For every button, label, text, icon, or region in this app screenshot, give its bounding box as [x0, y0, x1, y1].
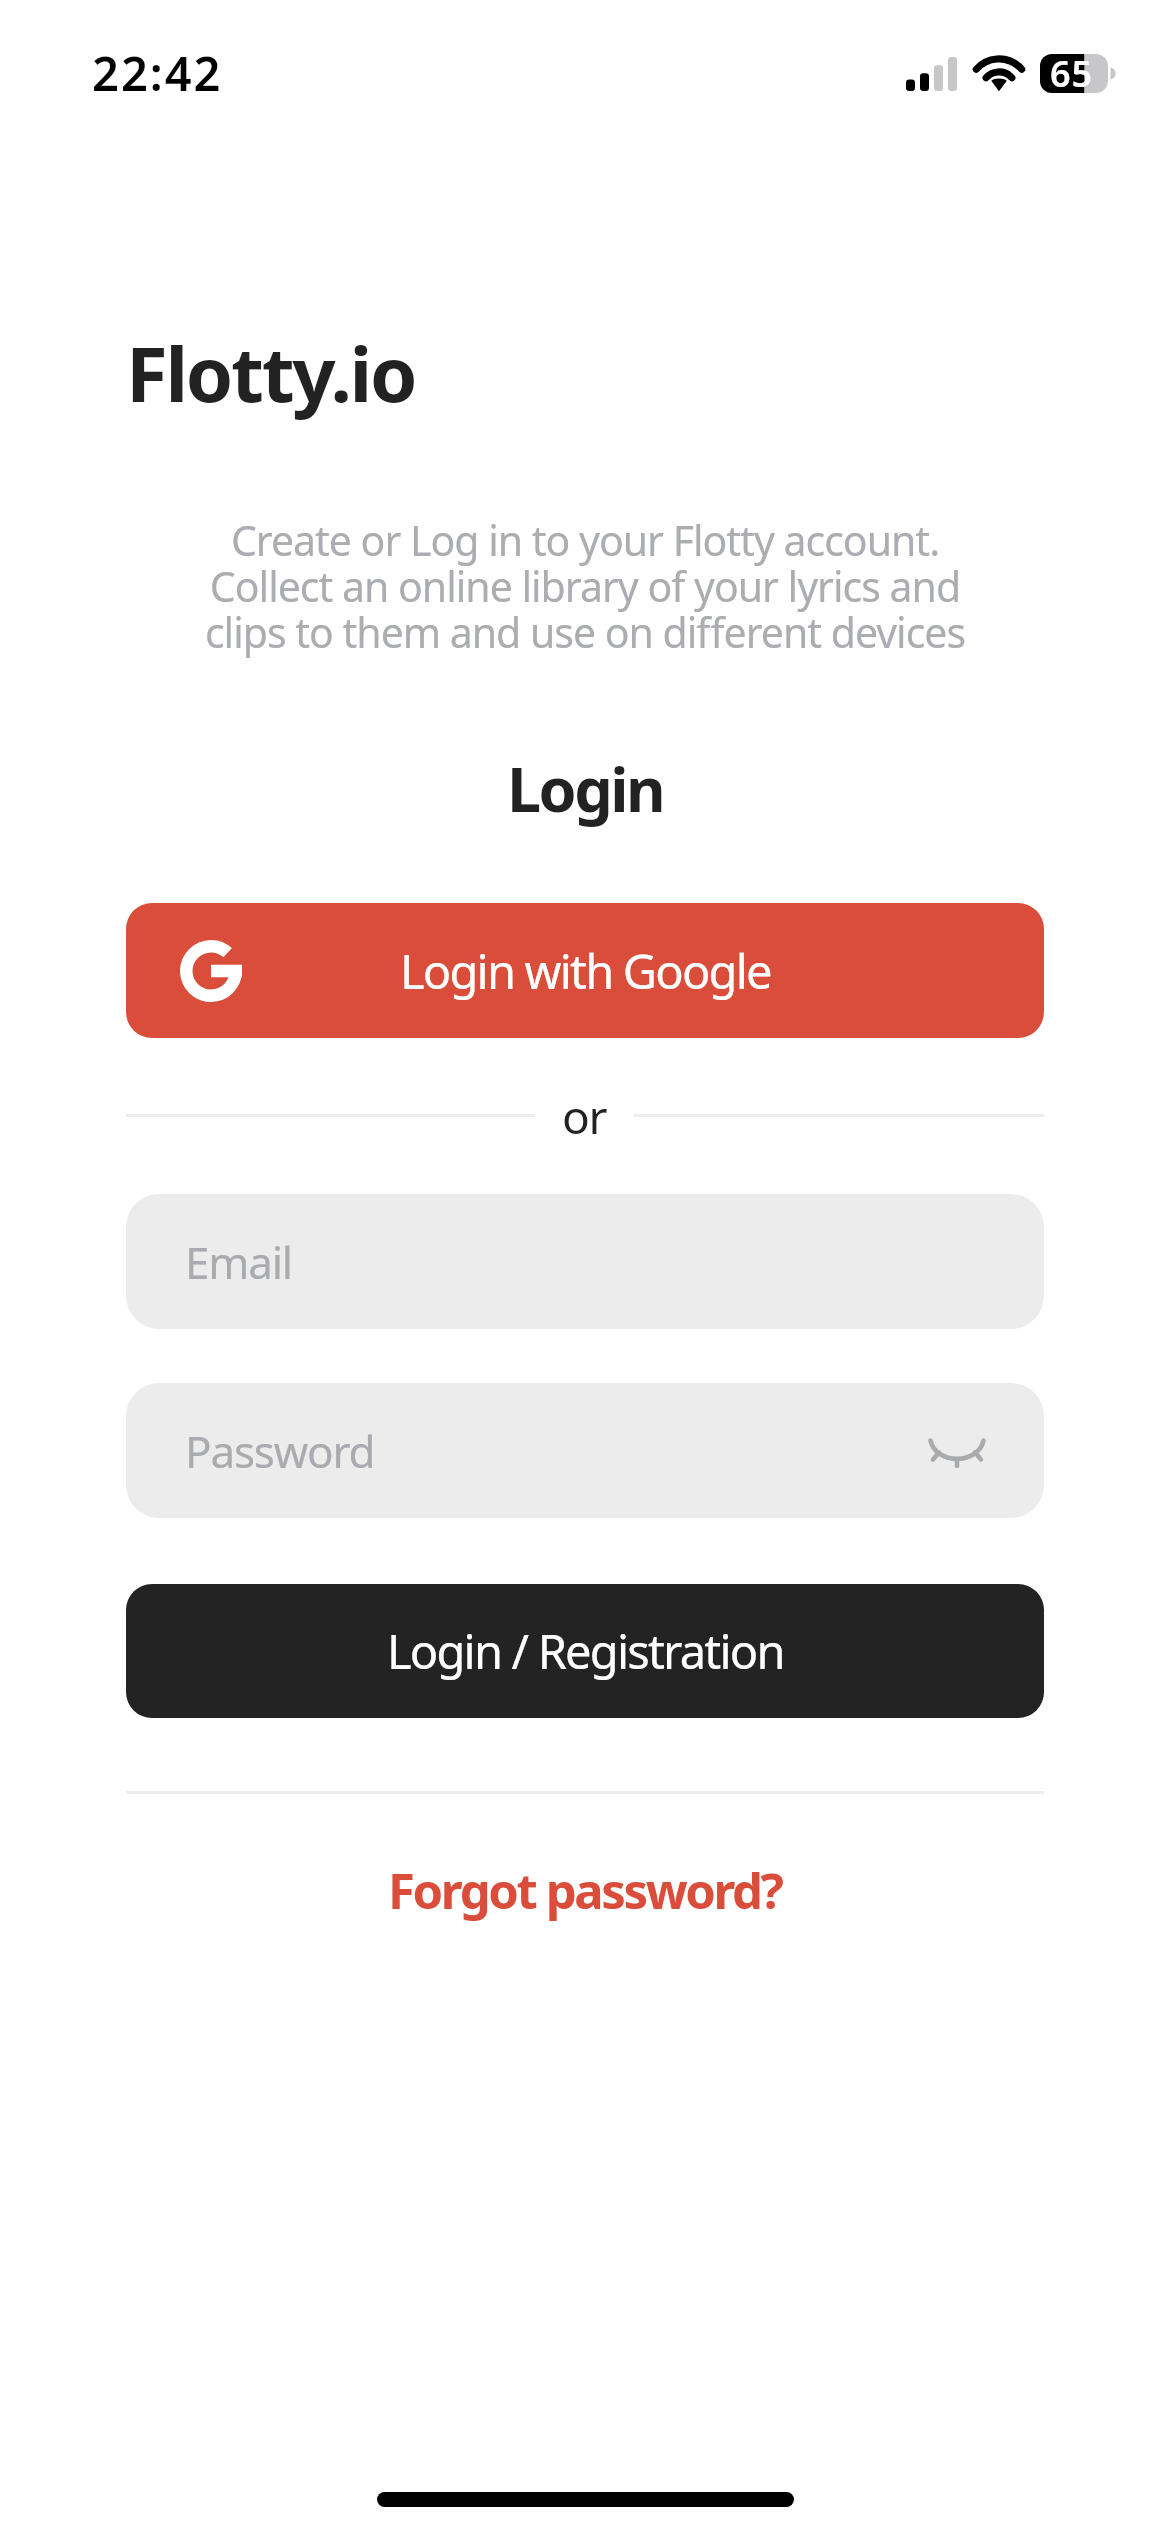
staticText: Email	[185, 1232, 292, 1292]
button[interactable]: Login / Registration	[126, 1584, 1044, 1718]
staticText: Password	[185, 1421, 375, 1481]
button[interactable]: Forgot password?	[0, 1854, 1170, 1926]
staticText: Flotty.io	[126, 321, 416, 425]
button[interactable]: Login with Google	[126, 903, 1044, 1038]
staticText: 22:42	[92, 41, 223, 105]
staticText: Login with Google	[400, 939, 771, 1003]
staticText: Create or Log in to your Flotty account.…	[0, 512, 1170, 660]
button[interactable]: Password	[126, 1383, 1044, 1518]
staticText: 65	[1050, 49, 1094, 98]
staticText: Login / Registration	[387, 1619, 784, 1683]
staticText: or	[562, 1085, 607, 1145]
button[interactable]: Show password	[913, 1411, 1001, 1499]
staticText: Login	[0, 747, 1170, 830]
button[interactable]: Email	[126, 1194, 1044, 1329]
staticText: Forgot password?	[388, 1857, 782, 1924]
